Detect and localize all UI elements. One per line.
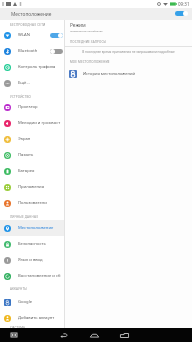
button[interactable]: Мелодии и громкост: [0, 115, 64, 131]
staticText: Язык и ввод: [18, 257, 43, 263]
button[interactable]: Back: [54, 328, 74, 342]
button[interactable]: Батарея: [0, 163, 64, 179]
staticText: Местоположение: [11, 11, 52, 18]
staticText: История местоположений: [83, 71, 136, 77]
button[interactable]: Проектор: [0, 99, 64, 115]
staticText: ПОСЛЕДНИЕ ЗАПРОСЫ: [70, 40, 107, 44]
button[interactable]: Экран: [0, 131, 64, 147]
staticText: Пользователи: [18, 200, 47, 206]
staticText: Добавить аккаунт: [18, 315, 55, 321]
staticText: Восстановление и сб: [18, 273, 61, 279]
button[interactable]: Память: [0, 147, 64, 163]
staticText: Батарея: [18, 168, 35, 174]
button[interactable]: Контроль трафика: [0, 59, 64, 75]
staticText: Минимальное потребление: [70, 29, 103, 32]
button[interactable]: Приложения: [0, 179, 64, 195]
staticText: Экран: [18, 136, 31, 142]
staticText: Проектор: [18, 104, 38, 110]
staticText: Приложения: [18, 184, 45, 190]
button[interactable]: Recent apps: [114, 328, 134, 342]
staticText: Контроль трафика: [18, 64, 56, 70]
staticText: Ещё...: [18, 80, 30, 86]
staticText: АККАУНТЫ: [10, 287, 27, 291]
button[interactable]: Местоположение: [0, 220, 64, 236]
button[interactable]: Bluetooth toggle: [50, 49, 63, 54]
staticText: 09:31: [178, 1, 190, 7]
staticText: Местоположение: [18, 225, 54, 231]
staticText: СИСТЕМА: [10, 326, 26, 328]
staticText: Bluetooth: [18, 48, 38, 54]
button[interactable]: Split screen: [6, 328, 22, 342]
staticText: МОЕ МЕСТОПОЛОЖЕНИЕ: [70, 60, 110, 64]
button[interactable]: Восстановление и сб: [0, 268, 64, 284]
staticText: Google: [18, 299, 33, 305]
button[interactable]: История местоположений: [65, 67, 192, 81]
staticText: WLAN: [18, 32, 30, 38]
button[interactable]: Google: [0, 294, 64, 310]
button[interactable]: Пользователи: [0, 195, 64, 211]
staticText: УСТРОЙСТВО: [10, 95, 32, 99]
button[interactable]: WLAN: [0, 27, 64, 43]
staticText: Безопасность: [18, 241, 46, 247]
staticText: Режим: [70, 22, 86, 29]
staticText: Мелодии и громкост: [18, 120, 61, 126]
button[interactable]: Режим: [65, 20, 192, 38]
button[interactable]: Home: [84, 328, 104, 342]
button[interactable]: Безопасность: [0, 236, 64, 252]
staticText: ЛИЧНЫЕ ДАННЫЕ: [10, 215, 39, 219]
button[interactable]: Добавить аккаунт: [0, 310, 64, 326]
staticText: Память: [18, 152, 34, 158]
button[interactable]: Язык и ввод: [0, 252, 64, 268]
button[interactable]: WLAN toggle: [50, 33, 63, 38]
button[interactable]: Location on/off: [175, 9, 189, 17]
staticText: В последнее время приложения не запрашив…: [82, 50, 175, 54]
button[interactable]: Bluetooth: [0, 43, 64, 59]
button[interactable]: Ещё...: [0, 75, 64, 91]
staticText: БЕСПРОВОДНЫЕ СЕТИ: [10, 23, 46, 27]
